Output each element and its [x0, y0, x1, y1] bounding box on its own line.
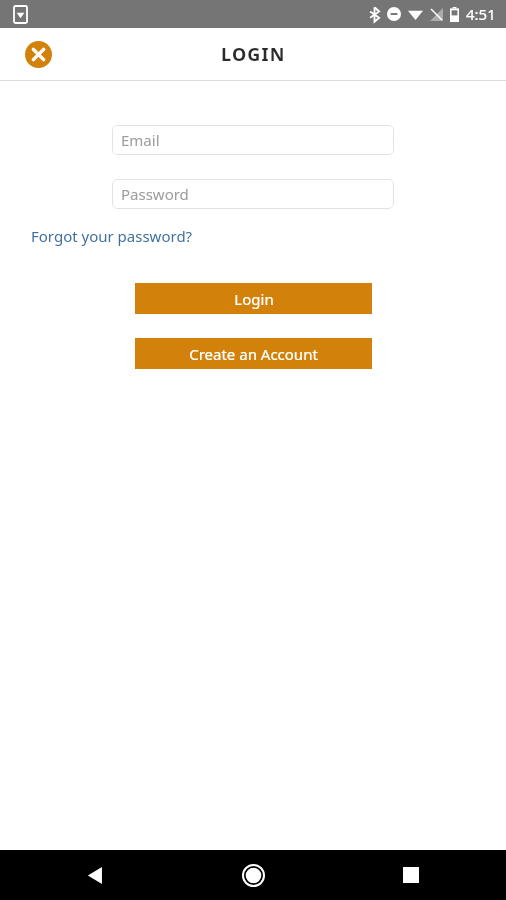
button[interactable]: Back — [72, 852, 118, 898]
staticText: Forgot your password? — [31, 226, 193, 246]
staticText: Email — [121, 130, 160, 150]
staticText: Create an Account — [189, 344, 318, 364]
staticText: Password — [121, 184, 189, 204]
button[interactable]: Create an Account — [135, 338, 372, 369]
staticText: Login — [234, 289, 274, 309]
button[interactable]: Email — [112, 125, 394, 155]
staticText: 4:51 — [466, 4, 496, 24]
button[interactable]: Login — [135, 283, 372, 314]
button[interactable]: Forgot your password? — [30, 224, 194, 248]
button[interactable]: Home — [230, 852, 276, 898]
button[interactable]: Password — [112, 179, 394, 209]
button[interactable]: Recent apps — [388, 852, 434, 898]
button[interactable]: Close — [21, 37, 55, 71]
staticText: LOGIN — [221, 42, 286, 67]
